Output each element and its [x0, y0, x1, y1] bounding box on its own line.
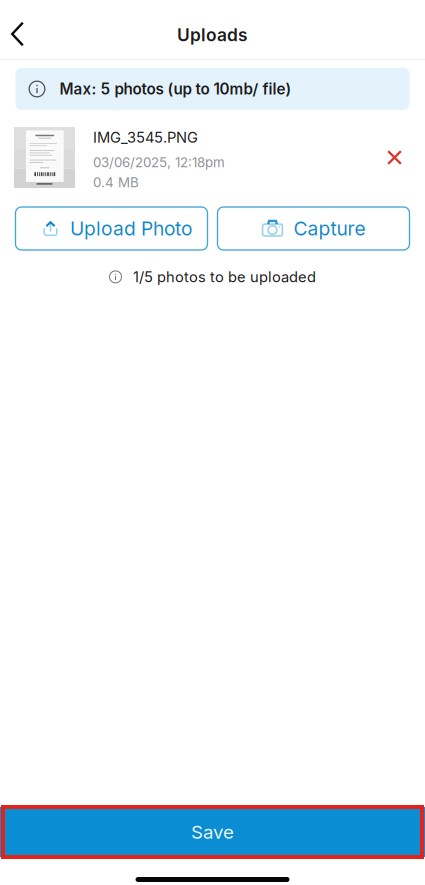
staticText: 1/5 photos to be uploaded: [133, 268, 316, 286]
button[interactable]: Upload Photo: [15, 207, 207, 250]
button[interactable]: Capture: [217, 207, 409, 250]
staticText: Upload Photo: [70, 217, 192, 240]
button[interactable]: Remove IMG_3545.PNG: [373, 136, 416, 179]
button[interactable]: Save: [0, 807, 425, 857]
button[interactable]: Back: [0, 12, 40, 55]
staticText: Save: [191, 821, 234, 843]
staticText: IMG_3545.PNG: [93, 128, 198, 146]
staticText: Capture: [293, 217, 365, 240]
staticText: 03/06/2025, 12:18pm: [93, 154, 225, 170]
staticText: 0.4 MB: [93, 174, 139, 190]
staticText: Max: 5 photos (up to 10mb/ file): [59, 80, 291, 98]
staticText: Uploads: [177, 24, 248, 45]
